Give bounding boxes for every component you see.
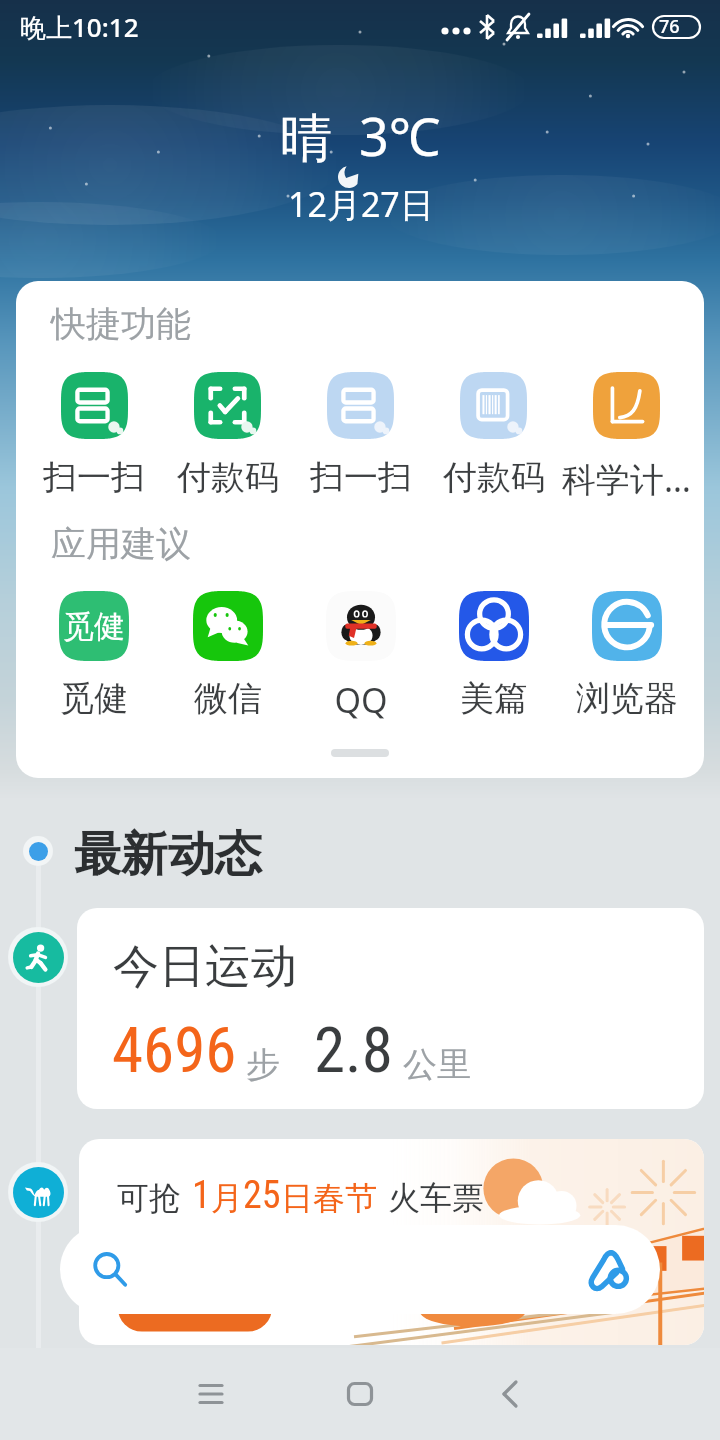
other: Voice assistant — [584, 1244, 636, 1296]
staticText: 4696 — [112, 1014, 237, 1088]
button[interactable]: 微信 — [161, 591, 294, 720]
staticText: 1 — [192, 1173, 211, 1218]
staticText: 可抢 — [117, 1178, 181, 1218]
staticText: 晚上10:12 — [20, 9, 139, 45]
staticText: 觅健 — [63, 607, 125, 646]
staticText: 76 — [659, 14, 680, 39]
staticText: 付款码 — [177, 456, 279, 499]
staticText: 25 — [243, 1173, 281, 1218]
staticText: 扫一扫 — [43, 456, 145, 499]
staticText: 月 — [211, 1178, 243, 1218]
button[interactable]: 付款码 — [161, 372, 294, 499]
staticText: 最新动态 — [74, 825, 262, 884]
staticText: 觅健 — [60, 677, 128, 720]
button[interactable]: 付款码 — [427, 372, 560, 499]
button[interactable]: Search — [60, 1225, 660, 1314]
staticText: 美篇 — [460, 677, 528, 720]
button[interactable]: 科学计… — [560, 372, 693, 502]
staticText: 公里 — [403, 1043, 471, 1086]
staticText: 科学计… — [562, 456, 691, 502]
button[interactable]: QQ — [294, 591, 427, 723]
button[interactable]: Recent apps — [165, 1348, 257, 1440]
staticText: 今日运动 — [113, 938, 297, 996]
staticText: 快捷功能 — [51, 302, 191, 346]
button[interactable]: 浏览器 — [560, 591, 693, 720]
staticText: 晴 3℃ — [280, 100, 441, 171]
staticText: 步 — [246, 1043, 280, 1086]
staticText: 火车票 — [388, 1178, 484, 1218]
staticText: 浏览器 — [576, 677, 678, 720]
staticText: 2.8 — [314, 1014, 393, 1088]
staticText: QQ — [334, 677, 388, 723]
staticText: 微信 — [194, 677, 262, 720]
staticText: 付款码 — [443, 456, 545, 499]
button[interactable]: 扫一扫 — [294, 372, 427, 499]
button[interactable]: 今日运动 — [77, 908, 704, 1109]
button[interactable]: 可抢 — [79, 1139, 704, 1345]
button[interactable]: 扫一扫 — [27, 372, 161, 499]
button[interactable]: 美篇 — [427, 591, 560, 720]
staticText: 12月27日 — [288, 181, 434, 227]
staticText: 应用建议 — [51, 522, 191, 566]
button[interactable]: Home — [314, 1348, 406, 1440]
staticText: 日春节 — [281, 1178, 377, 1218]
button[interactable]: 觅健 — [27, 591, 161, 720]
other: Search — [90, 1250, 130, 1290]
staticText: 扫一扫 — [310, 456, 412, 499]
button[interactable]: Back — [464, 1348, 556, 1440]
